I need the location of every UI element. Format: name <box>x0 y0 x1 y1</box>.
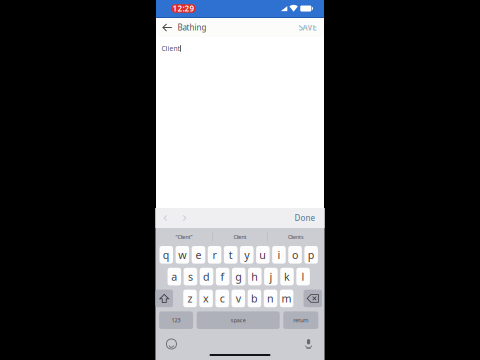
button[interactable]: SAVE <box>295 17 320 38</box>
button[interactable]: 123 <box>159 311 193 329</box>
button[interactable]: p <box>304 246 318 264</box>
staticText: Client <box>233 233 246 241</box>
staticText: c <box>220 291 225 305</box>
button[interactable]: j <box>264 268 278 285</box>
staticText: w <box>178 248 186 262</box>
staticText: u <box>259 248 266 262</box>
staticText: Bathing <box>177 22 206 33</box>
button[interactable]: c <box>215 290 229 307</box>
button[interactable]: return <box>283 311 318 329</box>
staticText: j <box>269 269 272 284</box>
button[interactable]: Clients <box>268 228 324 246</box>
staticText: h <box>251 269 258 284</box>
staticText: p <box>308 248 315 262</box>
button[interactable]: k <box>280 268 294 285</box>
button[interactable]: z <box>183 290 197 307</box>
button[interactable]: Client <box>213 228 267 246</box>
button[interactable]: f <box>216 268 229 285</box>
button[interactable]: t <box>224 246 237 264</box>
staticText: o <box>292 248 298 262</box>
button[interactable]: Previous or next field <box>161 211 188 225</box>
button[interactable]: i <box>272 246 286 264</box>
button[interactable]: u <box>256 246 270 264</box>
staticText: e <box>195 248 201 262</box>
button[interactable]: q <box>159 246 173 264</box>
staticText: m <box>282 291 292 305</box>
button[interactable]: x <box>199 290 213 307</box>
staticText: k <box>284 269 290 284</box>
staticText: l <box>302 269 305 284</box>
button[interactable]: m <box>280 290 293 307</box>
button[interactable]: s <box>184 268 197 285</box>
button[interactable]: h <box>248 268 261 285</box>
button[interactable]: w <box>176 246 189 264</box>
staticText: Clients <box>288 233 304 241</box>
staticText: q <box>163 248 170 262</box>
staticText: Client <box>162 44 180 53</box>
staticText: d <box>203 269 210 284</box>
button[interactable]: Shift <box>155 290 173 307</box>
button[interactable]: b <box>248 290 261 307</box>
staticText: n <box>267 291 274 305</box>
button[interactable]: o <box>288 246 302 264</box>
staticText: i <box>277 248 280 262</box>
staticText: SAVE <box>298 22 316 33</box>
button[interactable]: y <box>240 246 253 264</box>
staticText: t <box>229 248 233 262</box>
button[interactable]: “Client” <box>156 228 212 246</box>
staticText: “Client” <box>175 233 192 241</box>
button[interactable]: Delete <box>303 290 322 307</box>
button[interactable]: v <box>232 290 245 307</box>
staticText: a <box>171 269 177 284</box>
button[interactable]: n <box>264 290 277 307</box>
button[interactable]: Emoji keyboard <box>163 337 180 350</box>
staticText: space <box>231 317 246 324</box>
button[interactable]: Dictate <box>302 337 315 350</box>
staticText: r <box>213 248 217 262</box>
staticText: s <box>188 269 193 284</box>
button[interactable]: e <box>192 246 205 264</box>
button[interactable]: space <box>197 311 280 329</box>
button[interactable]: r <box>208 246 221 264</box>
staticText: 123 <box>172 317 181 324</box>
staticText: g <box>235 269 242 284</box>
staticText: x <box>203 291 209 305</box>
button[interactable]: l <box>296 268 310 285</box>
button[interactable]: g <box>232 268 245 285</box>
button[interactable]: d <box>200 268 213 285</box>
button[interactable]: a <box>167 268 181 285</box>
staticText: f <box>221 269 225 284</box>
staticText: b <box>251 291 258 305</box>
staticText: v <box>236 291 241 305</box>
staticText: 12:29 <box>172 3 194 14</box>
staticText: z <box>187 291 192 305</box>
staticText: return <box>293 317 308 324</box>
staticText: y <box>244 248 249 262</box>
button[interactable]: Back <box>156 18 177 37</box>
staticText: Done <box>294 213 315 223</box>
button[interactable]: Done <box>291 210 318 226</box>
